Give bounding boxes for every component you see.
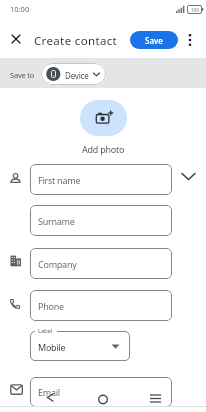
staticText: Mobile [38,341,66,353]
button[interactable] [184,33,196,47]
staticText: Phone [38,300,64,312]
staticText: Save to [10,70,35,80]
staticText: Label [38,327,53,335]
staticText: First name [38,174,81,186]
staticText: Add photo [82,143,125,155]
button[interactable]: Mobile [30,331,130,361]
button[interactable] [180,169,197,184]
button[interactable] [8,31,24,47]
button[interactable]: Email [30,377,172,407]
staticText: Save [145,35,163,46]
staticText: 100 [191,7,199,13]
button[interactable]: Surname [30,205,172,236]
button[interactable]: Company [30,248,172,279]
staticText: Create contact [34,33,118,49]
staticText: Device [65,70,89,81]
button[interactable]: Phone [30,290,172,321]
button[interactable]: Save [130,31,178,49]
button[interactable]: First name [30,164,172,195]
staticText: Email [38,386,60,398]
button[interactable]: Device [41,63,106,85]
staticText: 10:00 [10,4,30,14]
staticText: Surname [38,215,75,227]
button[interactable] [80,100,127,136]
staticText: Company [38,258,77,270]
